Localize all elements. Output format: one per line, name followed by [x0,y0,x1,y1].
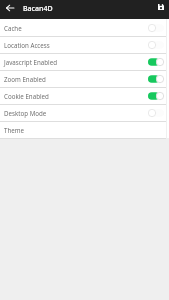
button[interactable]: Cache [0,19,169,36]
button[interactable]: Save [155,1,166,12]
staticText: Location Access [4,41,50,49]
staticText: Zoom Enabled [4,75,46,83]
button[interactable]: Javascript Enabled [0,53,169,70]
button[interactable]: Back [4,2,15,13]
button[interactable]: Cookie Enabled [0,87,169,104]
staticText: Javascript Enabled [4,58,57,66]
staticText: Desktop Mode [4,109,47,117]
staticText: Bacan4D [23,4,53,14]
staticText: Cache [4,24,22,32]
button[interactable]: Theme [0,121,169,138]
staticText: Cookie Enabled [4,92,49,100]
button[interactable]: Zoom Enabled [0,70,169,87]
button[interactable]: Location Access [0,36,169,53]
button[interactable]: Desktop Mode [0,104,169,121]
staticText: Theme [4,126,25,134]
